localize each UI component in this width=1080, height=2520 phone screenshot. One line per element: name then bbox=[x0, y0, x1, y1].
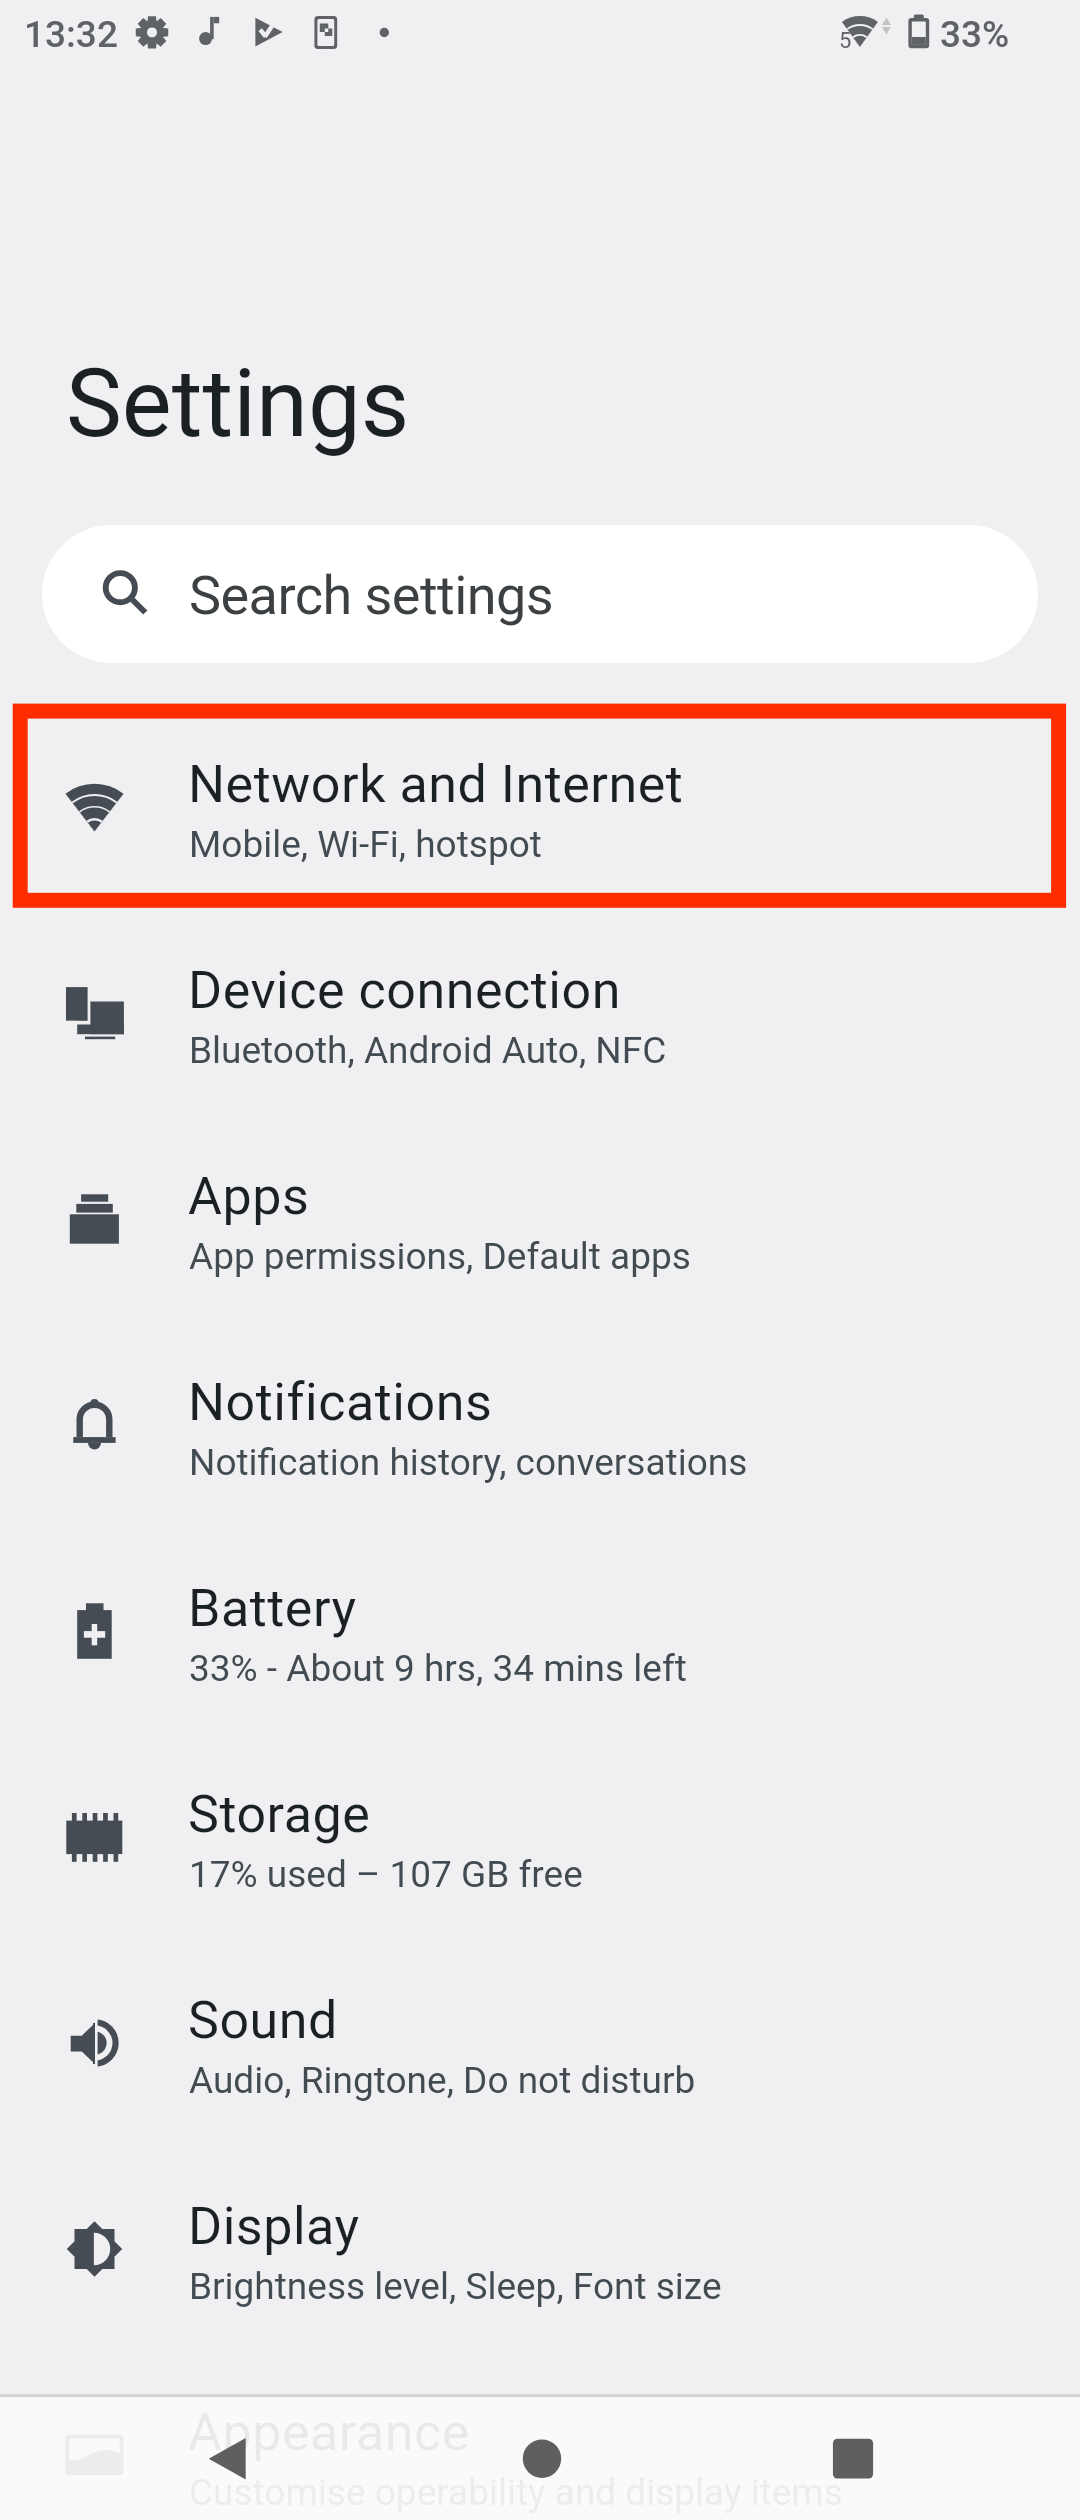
button[interactable]: Search settings bbox=[42, 525, 1038, 663]
staticText: Network and Internet bbox=[188, 754, 684, 815]
staticText: 13:32 bbox=[24, 13, 118, 56]
staticText: Search settings bbox=[189, 564, 554, 627]
button[interactable]: Network and Internet bbox=[0, 662, 1080, 868]
button[interactable]: Battery bbox=[0, 1486, 1080, 1692]
staticText: Bluetooth, Android Auto, NFC bbox=[189, 1029, 667, 1072]
staticText: 17% used – 107 GB free bbox=[189, 1853, 583, 1896]
staticText: Notification history, conversations bbox=[189, 1441, 748, 1484]
button[interactable]: Back bbox=[140, 2394, 340, 2520]
button[interactable]: Sound bbox=[0, 1898, 1080, 2104]
staticText: Sound bbox=[188, 1990, 338, 2051]
staticText: Display bbox=[188, 2196, 360, 2257]
staticText: Customise operability and display items bbox=[189, 2471, 843, 2514]
staticText: Device connection bbox=[188, 960, 621, 1021]
button[interactable]: Display bbox=[0, 2104, 1080, 2310]
button[interactable]: Recent apps bbox=[756, 2394, 956, 2520]
button[interactable]: Device connection bbox=[0, 868, 1080, 1074]
staticText: Settings bbox=[66, 349, 410, 459]
button[interactable]: Home bbox=[440, 2394, 640, 2520]
staticText: Battery bbox=[188, 1578, 357, 1639]
staticText: Mobile, Wi-Fi, hotspot bbox=[189, 823, 542, 866]
button[interactable]: Notifications bbox=[0, 1280, 1080, 1486]
staticText: 5 bbox=[839, 28, 852, 54]
staticText: Apps bbox=[188, 1166, 310, 1227]
staticText: Appearance bbox=[188, 2402, 470, 2463]
staticText: Storage bbox=[188, 1784, 371, 1845]
button[interactable]: Apps bbox=[0, 1074, 1080, 1280]
staticText: App permissions, Default apps bbox=[189, 1235, 691, 1278]
staticText: Notifications bbox=[188, 1372, 493, 1433]
staticText: 33% bbox=[940, 13, 1010, 56]
staticText: Brightness level, Sleep, Font size bbox=[189, 2265, 722, 2308]
staticText: 33% - About 9 hrs, 34 mins left bbox=[189, 1647, 687, 1690]
button[interactable]: Appearance bbox=[0, 2310, 1080, 2516]
button[interactable]: Storage bbox=[0, 1692, 1080, 1898]
staticText: Audio, Ringtone, Do not disturb bbox=[189, 2059, 696, 2102]
